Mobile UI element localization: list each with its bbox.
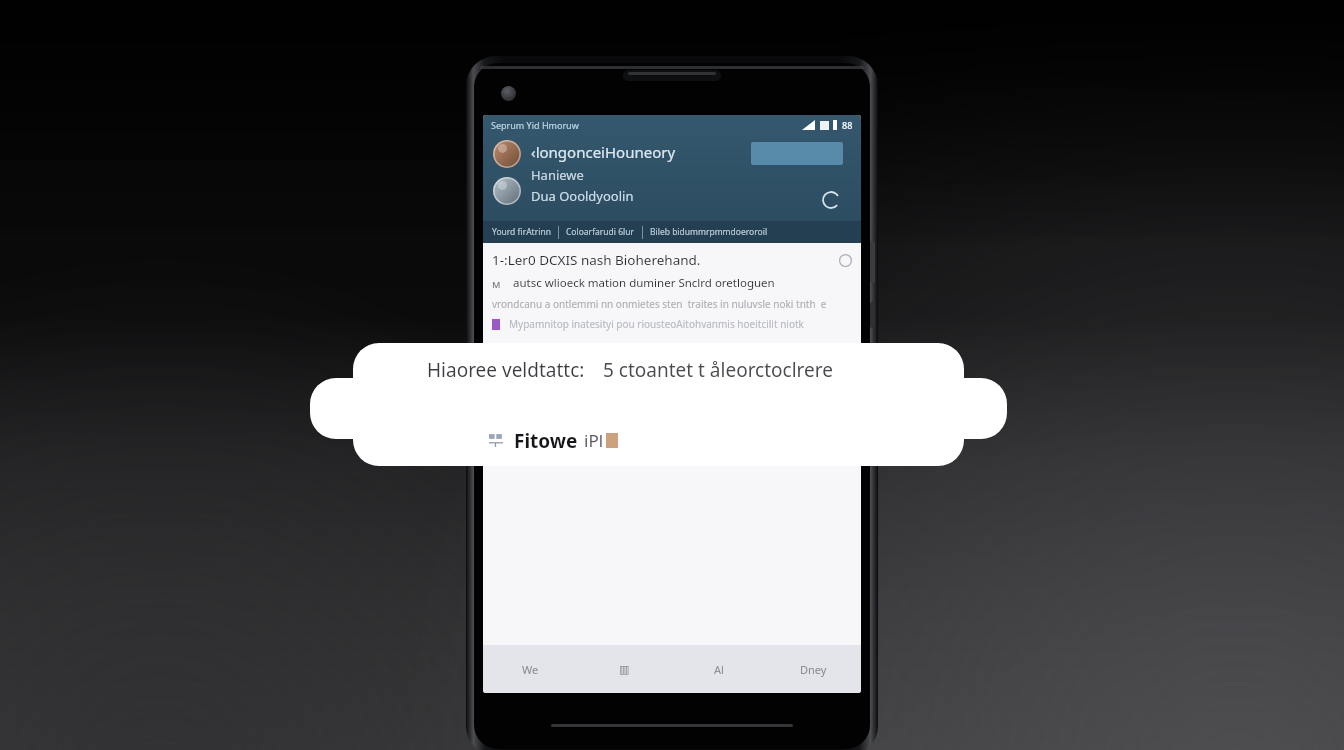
button[interactable]: ▥ <box>577 645 671 693</box>
staticText: Dney <box>800 662 827 677</box>
staticText: Seprum Yid Hmoruw <box>491 119 579 131</box>
staticText: consult aonrymene P 2 lina reaniter hu h… <box>492 340 802 353</box>
button[interactable]: Dney <box>766 645 861 693</box>
staticText: autsc wlioeck mation duminer Snclrd oret… <box>513 275 775 291</box>
button[interactable]: Refresh <box>821 190 841 210</box>
button[interactable]: Al <box>671 645 766 693</box>
staticText: ▥ <box>619 663 630 676</box>
staticText: Hiaoree veldtattc: <box>427 357 585 383</box>
staticText: 1-:Ler0 DCXIS nash Bioherehand. <box>492 251 701 269</box>
button[interactable]: Fitowe <box>489 428 618 452</box>
button[interactable]: More <box>839 254 852 267</box>
button[interactable]: We <box>483 645 577 693</box>
staticText: м <box>492 276 501 291</box>
staticText: Fitowe <box>514 428 578 452</box>
staticText: vrondcanu a ontlemmi nn onmietes sten tr… <box>492 297 827 311</box>
button[interactable]: Coloarfarudi 6lur <box>564 226 637 238</box>
staticText: Mypamnitop inatesityi pou riousteoAitohv… <box>509 317 804 331</box>
staticText: Haniewe <box>531 166 584 184</box>
staticText: We <box>522 662 539 677</box>
staticText: 88 <box>842 119 853 131</box>
staticText: Al <box>714 662 724 677</box>
staticText: iPl <box>584 429 604 452</box>
staticText: ‹longonceiHouneory <box>531 142 676 162</box>
button[interactable]: Bileb bidummrpmmdoeroroil <box>648 226 770 238</box>
button[interactable] <box>353 343 964 466</box>
staticText: 5 ctoantet t åleorctoclrere <box>603 357 833 383</box>
staticText: Yourd firАtrinn <box>492 226 551 238</box>
button[interactable]: Yourd firАtrinn <box>490 226 553 238</box>
staticText: Cochi Salx <box>688 374 748 391</box>
staticText: 94,4 une yoilatit re <box>516 374 621 390</box>
button[interactable]: Avatar <box>493 140 521 168</box>
staticText: Bileb bidummrpmmdoeroroil <box>650 226 768 238</box>
staticText: Coloarfarudi 6lur <box>566 226 635 238</box>
staticText: Dua Oooldyoolin <box>531 187 634 205</box>
button[interactable]: Avatar <box>493 177 521 205</box>
